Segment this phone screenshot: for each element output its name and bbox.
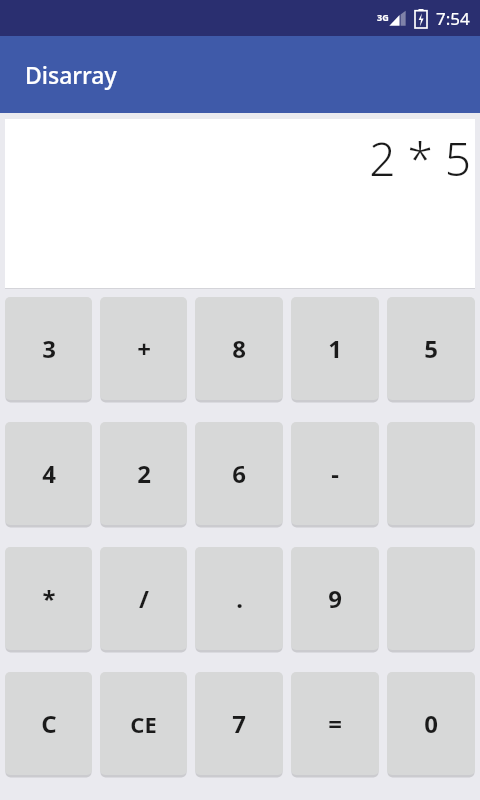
staticText: * bbox=[42, 582, 56, 615]
staticText: 5 bbox=[424, 332, 438, 365]
staticText: 7:54 bbox=[436, 7, 470, 30]
staticText: 7 bbox=[232, 707, 246, 740]
button[interactable]: / bbox=[100, 547, 187, 650]
button[interactable]: C bbox=[5, 672, 92, 775]
button[interactable]: 8 bbox=[195, 297, 283, 400]
button[interactable]: 2 * 5 bbox=[5, 119, 475, 288]
staticText: 3 bbox=[42, 332, 56, 365]
staticText: / bbox=[139, 582, 149, 615]
button[interactable]: + bbox=[100, 297, 187, 400]
button[interactable]: 4 bbox=[5, 422, 92, 525]
staticText: + bbox=[137, 332, 151, 365]
button[interactable]: - bbox=[291, 422, 379, 525]
button[interactable]: CE bbox=[100, 672, 187, 775]
button[interactable]: 7 bbox=[195, 672, 283, 775]
button[interactable]: * bbox=[5, 547, 92, 650]
button[interactable]: 0 bbox=[387, 672, 475, 775]
button[interactable]: 1 bbox=[291, 297, 379, 400]
staticText: 8 bbox=[232, 332, 246, 365]
staticText: - bbox=[331, 457, 339, 490]
button[interactable]: 6 bbox=[195, 422, 283, 525]
button[interactable]: 3 bbox=[5, 297, 92, 400]
button[interactable]: = bbox=[291, 672, 379, 775]
staticText: 2 * 5 bbox=[369, 127, 471, 190]
staticText: 3G bbox=[377, 11, 389, 23]
staticText: CE bbox=[130, 709, 157, 739]
staticText: 9 bbox=[328, 582, 342, 615]
button[interactable]: . bbox=[195, 547, 283, 650]
staticText: 2 bbox=[137, 457, 151, 490]
staticText: 1 bbox=[328, 332, 342, 365]
staticText: 6 bbox=[232, 457, 246, 490]
staticText: C bbox=[41, 707, 57, 740]
staticText: . bbox=[236, 582, 243, 615]
button[interactable]: 2 bbox=[100, 422, 187, 525]
button[interactable]: 5 bbox=[387, 297, 475, 400]
button[interactable]: 9 bbox=[291, 547, 379, 650]
staticText: 4 bbox=[42, 457, 56, 490]
staticText: Disarray bbox=[25, 59, 117, 90]
staticText: = bbox=[328, 707, 342, 740]
staticText: 0 bbox=[424, 707, 438, 740]
